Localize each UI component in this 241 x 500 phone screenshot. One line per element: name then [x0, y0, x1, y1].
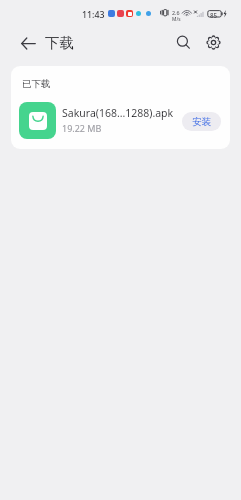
staticText: M/s	[172, 16, 181, 23]
staticText: 2.6	[172, 9, 180, 16]
button[interactable]: Back	[14, 29, 42, 57]
button[interactable]: Settings	[200, 29, 227, 56]
staticText: 安装	[192, 116, 211, 128]
staticText: 85	[210, 11, 218, 19]
button[interactable]: Search	[170, 29, 197, 56]
button[interactable]: 安装	[182, 112, 221, 131]
staticText: 下载	[45, 34, 74, 52]
button[interactable]	[11, 96, 230, 144]
staticText: 已下载	[22, 78, 51, 90]
staticText: 11:43	[82, 9, 105, 21]
staticText: 19.22 MB	[62, 122, 102, 134]
staticText: Sakura(168…1288).apk	[62, 106, 174, 120]
